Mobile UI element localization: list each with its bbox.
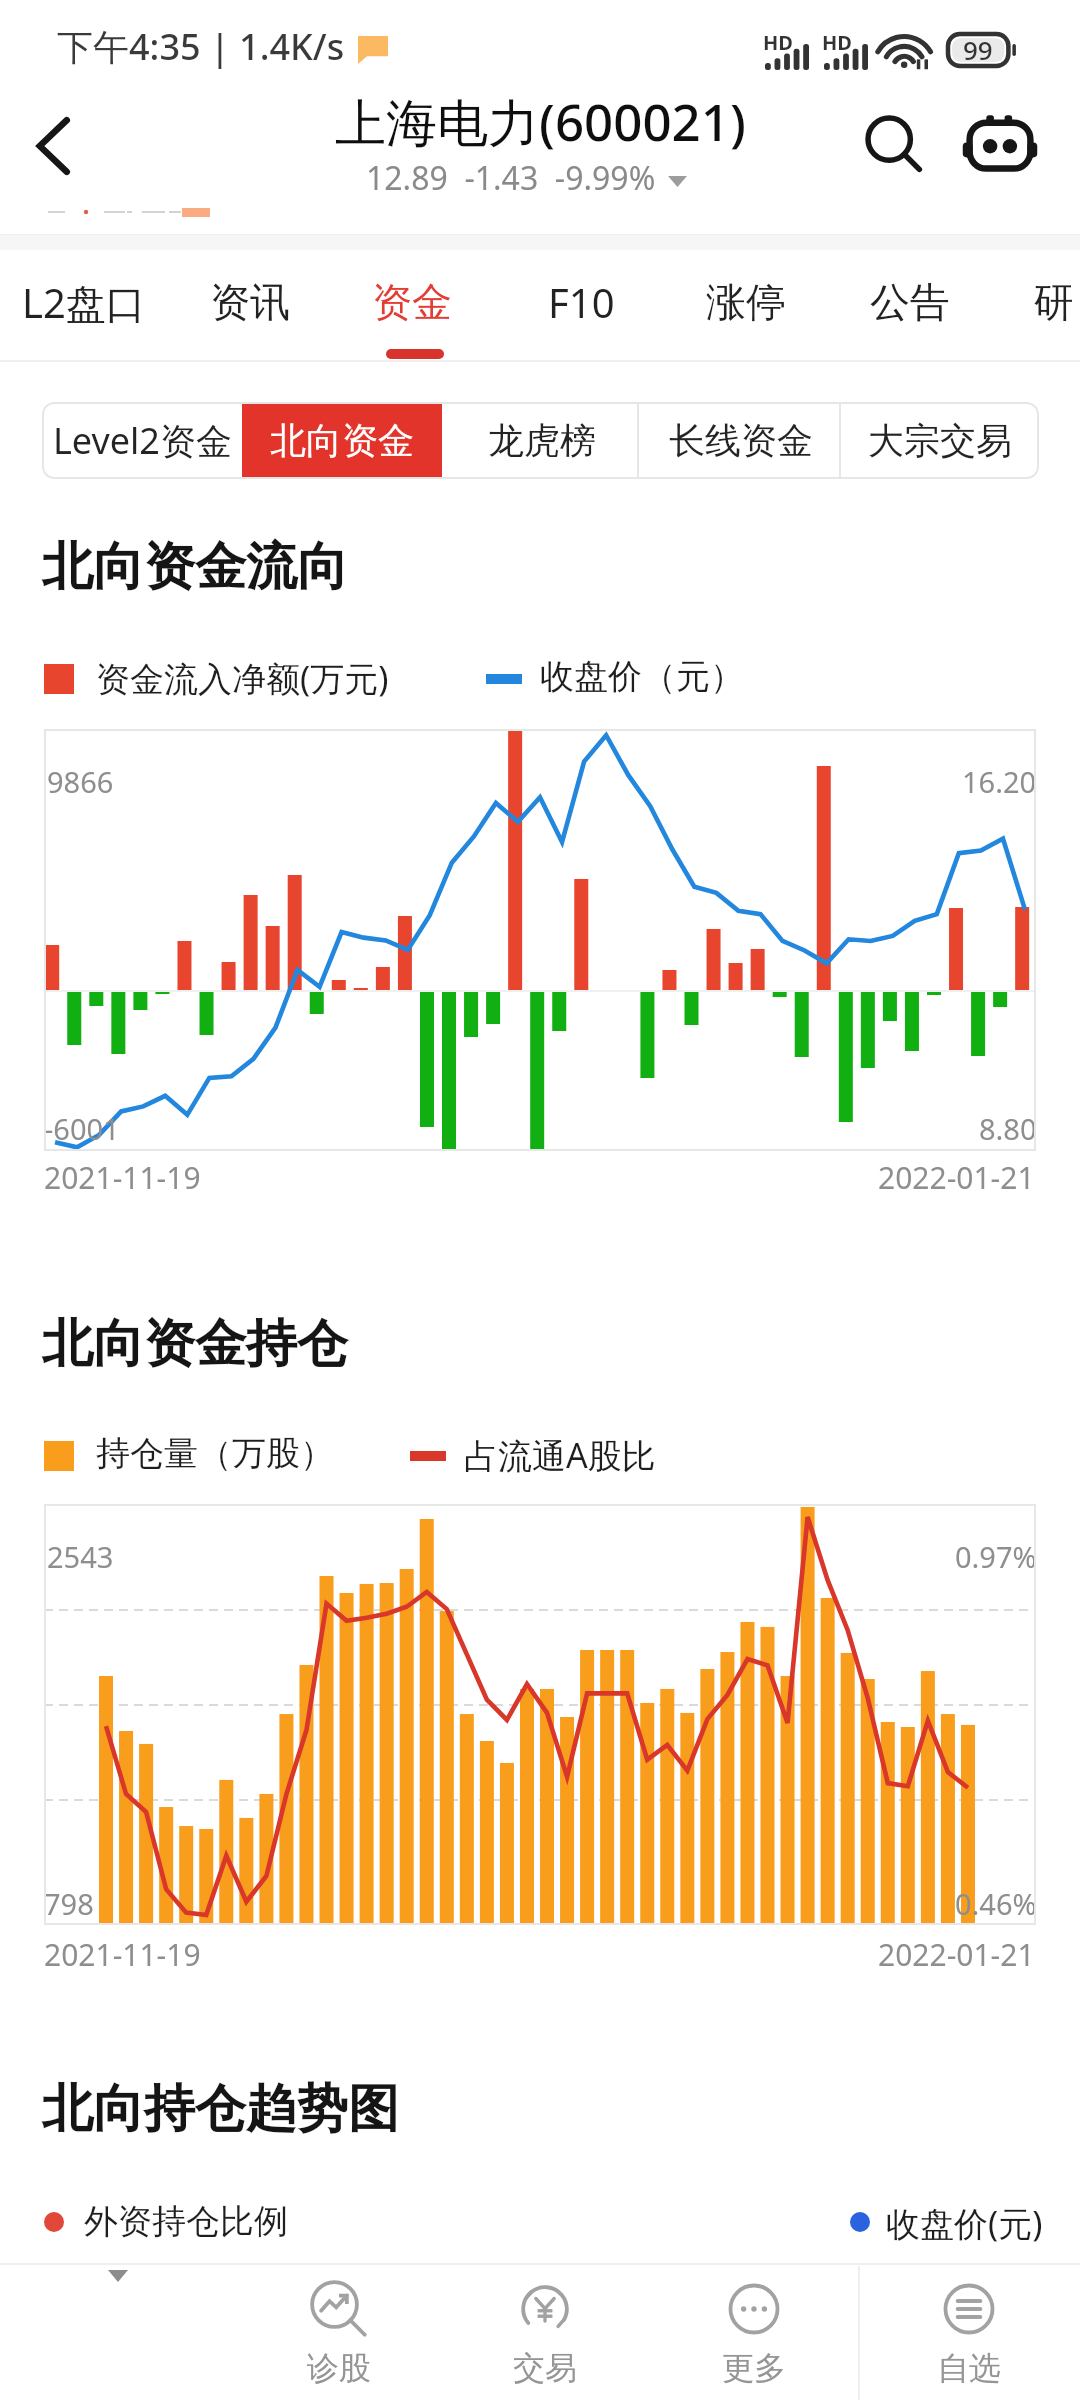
- staticText: 798: [44, 1884, 94, 1923]
- button[interactable]: Back: [1, 91, 111, 201]
- staticText: 2021-11-19: [44, 1157, 201, 1198]
- staticText: 长线资金: [669, 418, 813, 463]
- staticText: 交易: [513, 2348, 577, 2388]
- staticText: 涨停: [706, 277, 786, 327]
- staticText: 下午4:35 | 1.4K/s: [57, 22, 345, 71]
- staticText: 0.97%: [955, 1537, 1037, 1576]
- button[interactable]: F10: [548, 254, 615, 350]
- staticText: 9866: [47, 762, 114, 801]
- button[interactable]: 自选: [874, 2268, 1064, 2400]
- staticText: 2021-11-19: [44, 1934, 201, 1975]
- staticText: 收盘价（元）: [540, 655, 744, 698]
- staticText: 12.89 -1.43 -9.99%: [366, 156, 656, 200]
- staticText: 北向资金流向: [42, 535, 348, 599]
- staticText: 资讯: [210, 277, 290, 327]
- staticText: Level2资金: [53, 416, 232, 465]
- staticText: 占流通A股比: [464, 1432, 656, 1478]
- staticText: 收盘价(元): [886, 2200, 1043, 2246]
- button[interactable]: Level2资金: [42, 402, 242, 479]
- staticText: 16.20: [962, 762, 1037, 801]
- staticText: 0.46%: [955, 1884, 1037, 1923]
- button[interactable]: AI assistant: [950, 95, 1050, 195]
- staticText: 大宗交易: [868, 418, 1012, 463]
- button[interactable]: 研: [1034, 254, 1074, 350]
- staticText: 上海电力(600021): [335, 86, 746, 156]
- staticText: 北向资金持仓: [42, 1312, 348, 1376]
- staticText: 资金: [372, 277, 452, 327]
- button[interactable]: 更多: [659, 2268, 849, 2400]
- staticText: 外资持仓比例: [84, 2200, 288, 2243]
- staticText: HD: [763, 29, 793, 56]
- button[interactable]: 交易: [450, 2268, 640, 2400]
- button[interactable]: 北向资金: [242, 402, 442, 479]
- staticText: 2022-01-21: [878, 1934, 1035, 1975]
- staticText: 2543: [47, 1537, 114, 1576]
- staticText: HD: [822, 29, 852, 56]
- staticText: 更多: [722, 2348, 786, 2388]
- button[interactable]: 龙虎榜: [442, 402, 641, 479]
- staticText: -6001: [44, 1109, 120, 1148]
- staticText: 龙虎榜: [488, 418, 596, 463]
- button[interactable]: 长线资金: [641, 402, 840, 479]
- button[interactable]: 公告: [870, 254, 950, 350]
- staticText: L2盘口: [22, 275, 146, 330]
- staticText: 北向持仓趋势图: [42, 2077, 399, 2141]
- button[interactable]: Search: [845, 95, 945, 195]
- staticText: 公告: [870, 277, 950, 327]
- staticText: 持仓量（万股）: [96, 1432, 334, 1475]
- staticText: 2022-01-21: [878, 1157, 1035, 1198]
- button[interactable]: 诊股: [244, 2268, 434, 2400]
- staticText: 研: [1034, 277, 1074, 327]
- staticText: 北向资金: [270, 418, 414, 463]
- staticText: 诊股: [307, 2348, 371, 2388]
- staticText: 99: [963, 32, 993, 67]
- staticText: 自选: [937, 2348, 1001, 2388]
- staticText: 资金流入净额(万元): [96, 655, 389, 701]
- button[interactable]: 资金: [372, 254, 452, 350]
- staticText: 8.80: [979, 1109, 1037, 1148]
- button[interactable]: 大宗交易: [840, 402, 1039, 479]
- button[interactable]: 资讯: [210, 254, 290, 350]
- staticText: F10: [548, 275, 615, 329]
- button[interactable]: L2盘口: [22, 254, 146, 350]
- button[interactable]: 涨停: [706, 254, 786, 350]
